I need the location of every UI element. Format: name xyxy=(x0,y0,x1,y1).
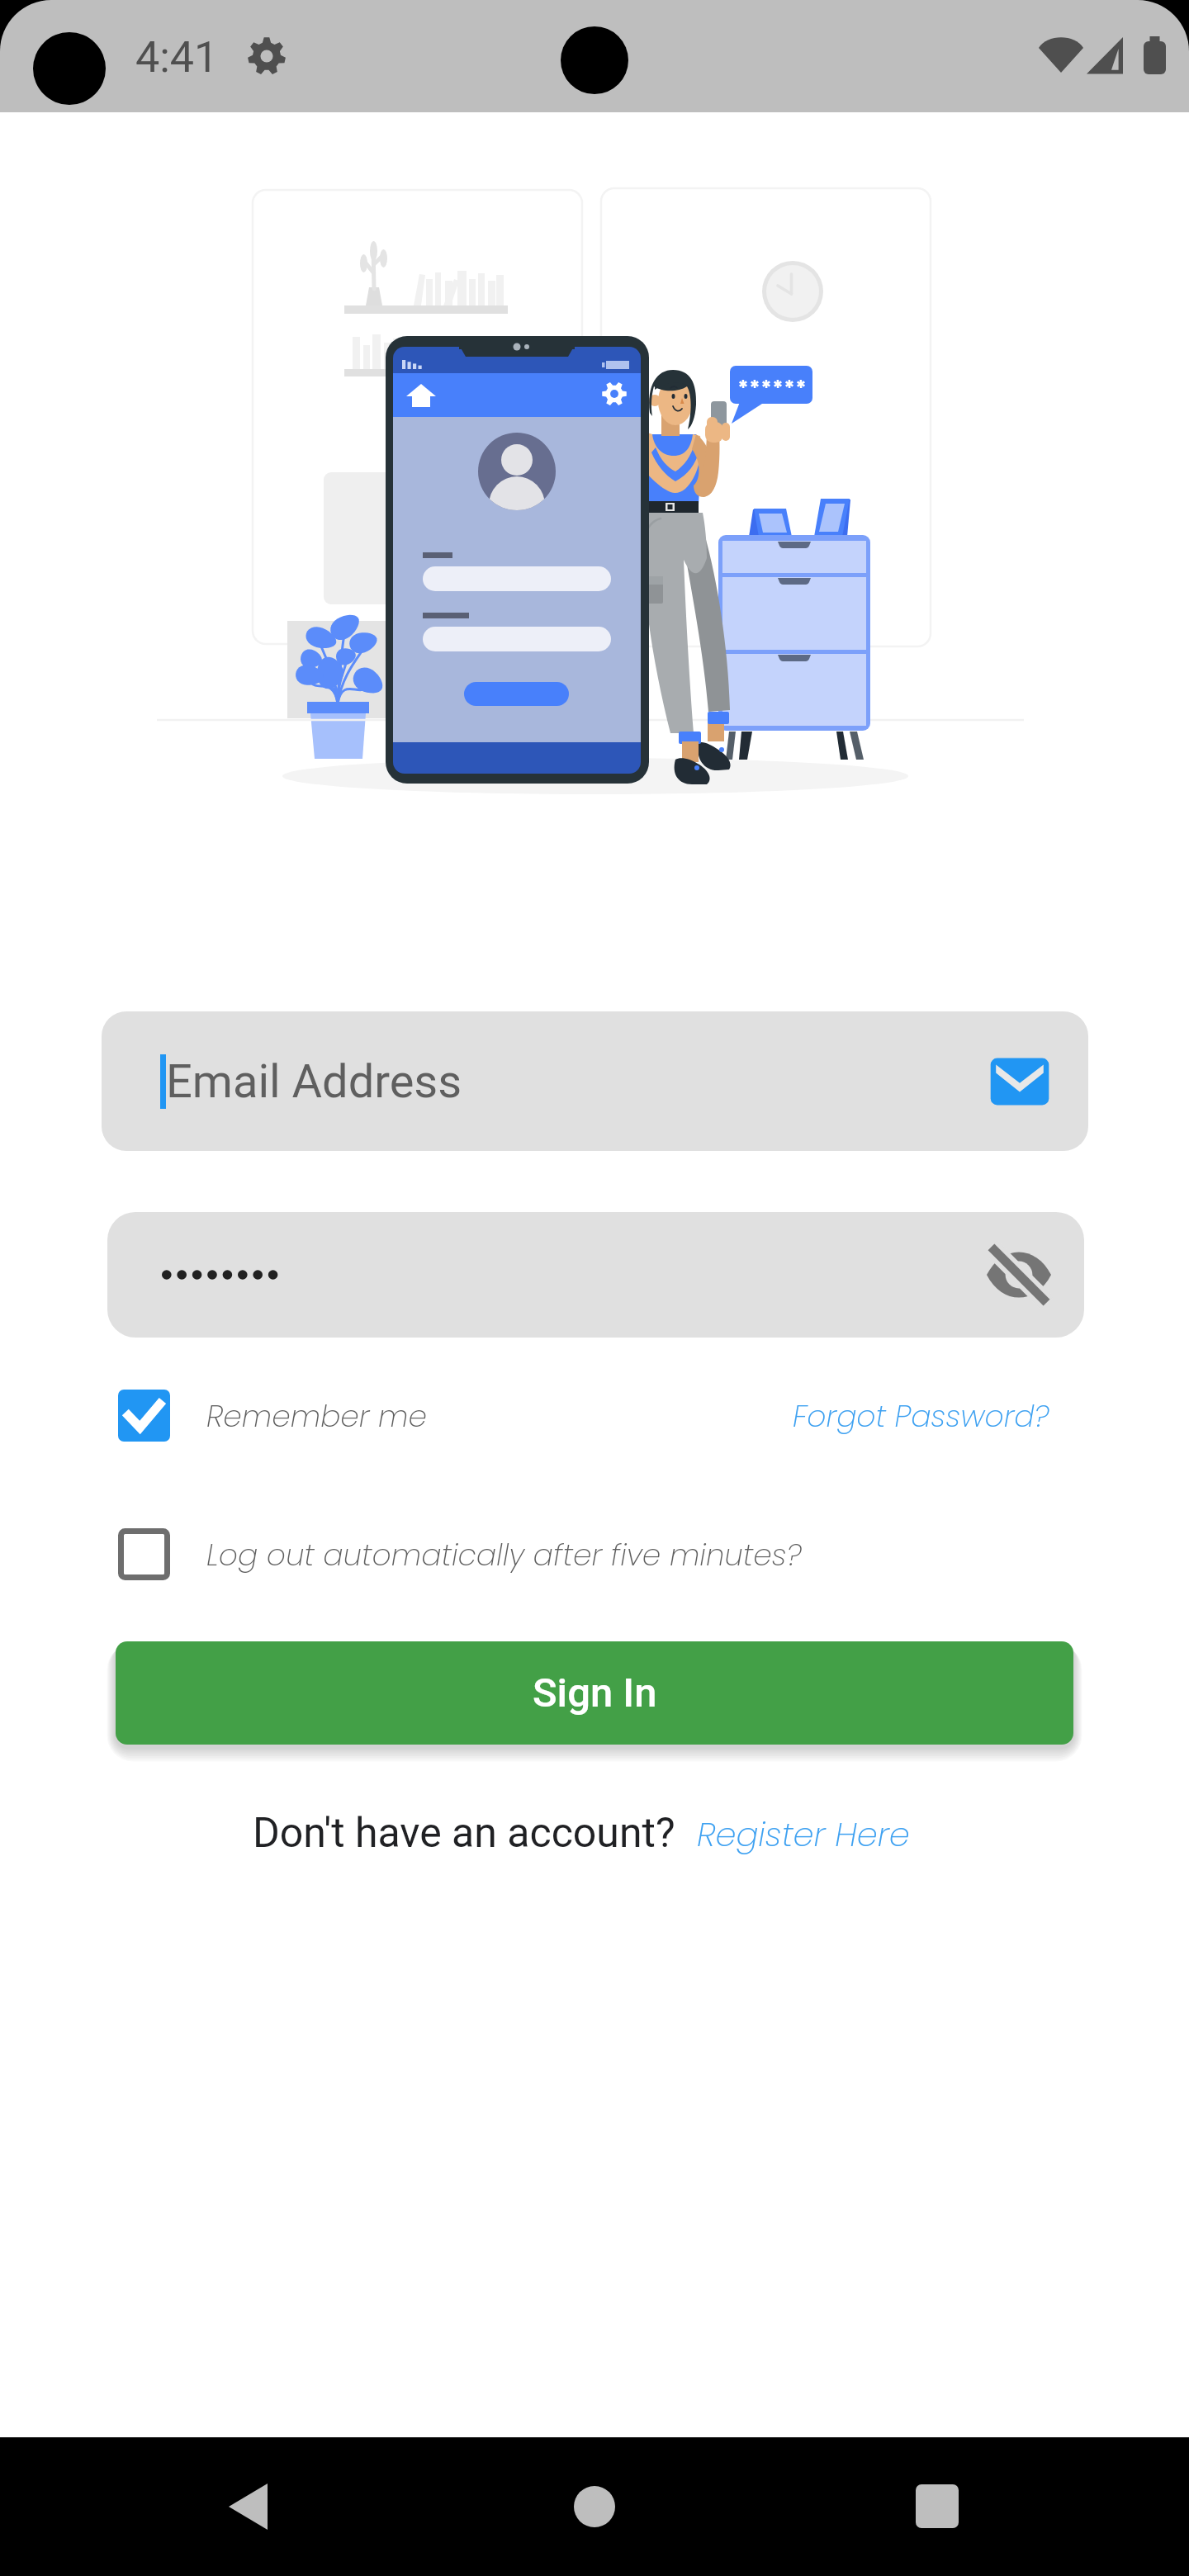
button[interactable]: Recent apps xyxy=(793,2437,1189,2576)
button[interactable]: Remember me, checked xyxy=(118,1390,170,1442)
button[interactable]: Register Here xyxy=(697,1811,910,1858)
button[interactable]: Email xyxy=(978,1040,1061,1123)
staticText: Remember me xyxy=(206,1395,427,1437)
button[interactable]: Home xyxy=(396,2437,793,2576)
staticText: Sign In xyxy=(533,1669,657,1717)
staticText: Don't have an account? xyxy=(253,1809,675,1858)
button[interactable]: Show password xyxy=(973,1229,1064,1320)
button[interactable]: Forgot Password? xyxy=(793,1395,1049,1437)
button[interactable]: Email Address xyxy=(102,1011,1088,1151)
button[interactable]: Log out automatically, unchecked xyxy=(118,1528,170,1580)
staticText: Email Address xyxy=(166,1054,462,1109)
button[interactable]: Back xyxy=(0,2437,396,2576)
staticText: Log out automatically after five minutes… xyxy=(206,1534,802,1575)
button[interactable]: Show password xyxy=(107,1212,1084,1338)
button[interactable]: Sign In xyxy=(116,1641,1073,1745)
staticText: 4:41 xyxy=(135,32,219,83)
